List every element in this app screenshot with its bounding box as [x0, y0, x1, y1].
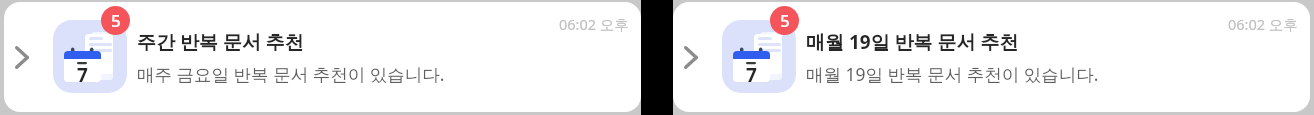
staticText: 매월 19일 반복 문서 추천: [806, 29, 1019, 55]
button[interactable]: 06:02 오후: [4, 2, 641, 112]
staticText: 06:02 오후: [1228, 14, 1298, 34]
button[interactable]: 06:02 오후: [673, 2, 1310, 112]
staticText: 5: [111, 9, 121, 32]
button[interactable]: Open: [9, 40, 35, 74]
staticText: 7: [77, 62, 88, 86]
staticText: 06:02 오후: [559, 14, 629, 34]
staticText: 주간 반복 문서 추천: [137, 29, 304, 55]
staticText: 매월 19일 반복 문서 추천이 있습니다.: [806, 62, 1099, 86]
staticText: 5: [780, 9, 790, 32]
button[interactable]: Open: [678, 40, 704, 74]
staticText: 매주 금요일 반복 문서 추천이 있습니다.: [137, 62, 445, 86]
staticText: 7: [746, 62, 757, 86]
